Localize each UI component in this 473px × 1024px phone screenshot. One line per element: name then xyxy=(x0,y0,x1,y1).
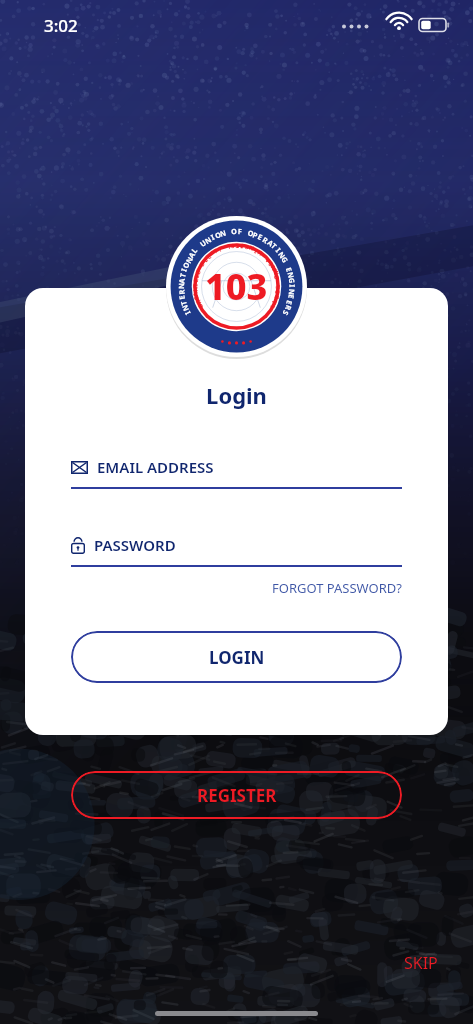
staticText: V xyxy=(256,249,264,257)
staticText: LOGIN xyxy=(209,646,265,669)
staticText: , xyxy=(217,245,222,253)
button[interactable]: SKIP xyxy=(400,950,442,976)
staticText: D xyxy=(194,268,203,276)
staticText: N xyxy=(203,234,213,246)
staticText: R xyxy=(176,289,187,295)
staticText: 103 xyxy=(205,262,268,311)
staticText: G xyxy=(279,255,291,265)
staticText: S xyxy=(281,309,291,317)
staticText: N xyxy=(276,250,288,260)
staticText: EMAIL ADDRESS xyxy=(97,457,214,477)
staticText: A xyxy=(186,250,197,260)
staticText: A xyxy=(270,298,279,306)
staticText: O xyxy=(213,229,223,241)
staticText: E xyxy=(202,256,210,264)
staticText: O xyxy=(273,289,282,295)
staticText: N xyxy=(176,283,186,289)
staticText: L xyxy=(268,302,277,310)
staticText: G xyxy=(287,277,297,285)
staticText: I xyxy=(239,242,243,250)
staticText: T xyxy=(269,241,280,251)
staticText: U xyxy=(198,237,208,249)
staticText: A xyxy=(263,255,272,264)
staticText: N xyxy=(219,227,227,239)
staticText: O xyxy=(196,302,205,310)
staticText: E xyxy=(193,273,201,279)
staticText: N xyxy=(179,303,191,313)
staticText: C xyxy=(205,253,213,261)
staticText: 9 xyxy=(236,242,240,250)
staticText: O xyxy=(231,226,237,236)
staticText: I xyxy=(266,260,275,267)
staticText: REGISTER xyxy=(197,784,277,807)
staticText: O xyxy=(272,274,281,280)
staticText: I xyxy=(287,284,297,287)
staticText: N xyxy=(269,264,278,272)
staticText: 7 xyxy=(212,246,220,255)
staticText: C xyxy=(244,243,250,251)
staticText: P xyxy=(251,229,259,240)
button[interactable]: FORGOT PASSWORD? xyxy=(272,576,402,600)
staticText: E xyxy=(284,266,295,274)
staticText: N xyxy=(248,243,255,253)
staticText: A xyxy=(265,237,275,248)
staticText: A xyxy=(176,278,187,284)
staticText: R xyxy=(194,299,203,305)
staticText: Z xyxy=(192,277,200,283)
staticText: E xyxy=(286,294,297,300)
staticText: O xyxy=(180,260,192,270)
staticText: F xyxy=(238,226,242,236)
staticText: PASSWORD xyxy=(94,535,176,555)
staticText: 6 xyxy=(239,242,244,250)
staticText: T xyxy=(178,299,189,307)
staticText: M xyxy=(271,268,281,276)
staticText: I xyxy=(191,283,200,287)
staticText: R xyxy=(261,234,270,245)
staticText: 3:02 xyxy=(44,14,78,37)
staticText: I xyxy=(209,232,216,242)
staticText: R xyxy=(274,285,282,289)
staticText: 1 xyxy=(226,243,232,251)
staticText: E xyxy=(176,294,187,300)
staticText: A xyxy=(191,291,200,297)
staticText: I xyxy=(274,246,283,254)
button[interactable]: EMAIL ADDRESS xyxy=(71,457,402,489)
staticText: N xyxy=(183,255,195,265)
staticText: Login xyxy=(25,380,448,410)
staticText: R xyxy=(283,304,294,312)
staticText: D xyxy=(198,260,207,268)
staticText: I xyxy=(178,267,189,273)
staticText: E xyxy=(256,231,265,243)
staticText: O xyxy=(247,227,255,239)
staticText: 8 xyxy=(231,242,235,250)
staticText: SKIP xyxy=(404,952,438,974)
staticText: N xyxy=(285,271,296,279)
button[interactable]: PASSWORD xyxy=(71,535,402,567)
staticText: B xyxy=(273,294,281,300)
staticText: L xyxy=(189,245,200,255)
button[interactable]: LOGIN xyxy=(71,631,402,683)
staticText: N xyxy=(287,289,297,295)
staticText: N xyxy=(191,286,200,292)
staticText: I xyxy=(182,309,193,317)
staticText: G xyxy=(192,294,201,301)
staticText: T xyxy=(177,271,188,278)
staticText: I xyxy=(252,247,259,255)
staticText: E xyxy=(284,299,295,307)
button[interactable]: REGISTER xyxy=(71,771,402,819)
staticText: T xyxy=(235,242,239,250)
